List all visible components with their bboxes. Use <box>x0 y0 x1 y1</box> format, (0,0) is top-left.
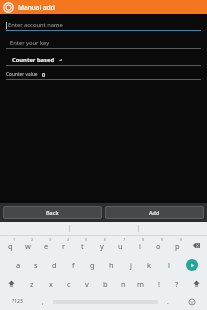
staticText: 0 <box>180 237 183 242</box>
staticText: Counter based <box>12 56 55 64</box>
button[interactable]: i <box>130 236 149 255</box>
staticText: n <box>121 279 126 289</box>
staticText: z <box>30 279 34 289</box>
button[interactable]: q <box>1 236 19 255</box>
button[interactable]: Shift <box>1 274 22 293</box>
button[interactable]: a <box>9 255 27 274</box>
staticText: p <box>175 241 180 251</box>
staticText: f <box>72 260 75 270</box>
staticText: x <box>49 279 53 289</box>
staticText: i <box>139 241 141 251</box>
button[interactable]: n <box>114 274 132 293</box>
button[interactable]: x <box>41 274 60 293</box>
button[interactable]: Add <box>105 206 204 219</box>
staticText: 7 <box>123 237 126 242</box>
button[interactable]: z <box>22 274 41 293</box>
staticText: 3 <box>49 237 52 242</box>
staticText: ?123 <box>12 298 23 305</box>
staticText: o <box>156 241 161 251</box>
staticText: v <box>85 279 89 289</box>
staticText: d <box>52 260 57 270</box>
button[interactable]: Backspace <box>187 236 206 255</box>
staticText: l <box>168 260 170 270</box>
staticText: Enter your key <box>10 39 50 47</box>
button[interactable]: y <box>92 236 111 255</box>
staticText: y <box>100 241 104 251</box>
button[interactable]: c <box>60 274 78 293</box>
button[interactable]: Counter based <box>12 54 201 65</box>
button[interactable]: p <box>168 236 187 255</box>
staticText: 0 <box>42 71 46 78</box>
staticText: Enter account name <box>8 21 63 29</box>
button[interactable]: j <box>121 255 140 274</box>
button[interactable]: . <box>158 293 178 310</box>
button[interactable]: Back <box>3 206 102 219</box>
button[interactable]: Space <box>53 298 158 305</box>
button[interactable]: Enter <box>178 255 206 274</box>
staticText: m <box>137 279 145 289</box>
staticText: 9 <box>161 237 164 242</box>
staticText: Add <box>149 209 160 216</box>
button[interactable]: Shift <box>186 274 206 293</box>
staticText: 5 <box>85 237 88 242</box>
button[interactable]: b <box>96 274 114 293</box>
staticText: 2 <box>31 237 34 242</box>
staticText: b <box>103 279 108 289</box>
staticText: h <box>109 260 114 270</box>
staticText: q <box>8 241 13 251</box>
button[interactable]: ? <box>168 274 186 293</box>
button[interactable]: , <box>33 293 53 310</box>
button[interactable]: u <box>111 236 130 255</box>
staticText: u <box>118 241 123 251</box>
staticText: ? <box>175 279 179 289</box>
staticText: e <box>44 241 49 251</box>
staticText: ! <box>158 279 161 289</box>
staticText: g <box>90 260 95 270</box>
button[interactable]: s <box>27 255 45 274</box>
button[interactable]: r <box>55 236 73 255</box>
staticText: , <box>42 297 44 306</box>
staticText: 4 <box>67 237 70 242</box>
button[interactable]: t <box>73 236 92 255</box>
button[interactable]: g <box>83 255 102 274</box>
button[interactable]: k <box>140 255 159 274</box>
button[interactable]: App icon <box>3 2 14 13</box>
button[interactable]: Enter account name <box>6 19 201 30</box>
staticText: j <box>130 260 132 270</box>
button[interactable]: l <box>159 255 178 274</box>
staticText: 6 <box>104 237 107 242</box>
button[interactable]: f <box>64 255 83 274</box>
staticText: k <box>147 260 152 270</box>
button[interactable]: ! <box>150 274 168 293</box>
button[interactable]: Counter value <box>6 69 201 79</box>
staticText: 8 <box>142 237 145 242</box>
button[interactable]: Enter your key <box>10 37 201 48</box>
staticText: t <box>81 241 84 251</box>
button[interactable]: Emoji <box>178 293 206 310</box>
staticText: r <box>62 241 66 251</box>
staticText: w <box>25 241 31 251</box>
button[interactable]: o <box>149 236 168 255</box>
button[interactable]: ?123 <box>1 293 33 310</box>
staticText: a <box>16 260 21 270</box>
staticText: . <box>167 297 169 306</box>
staticText: 1 <box>13 237 16 242</box>
button[interactable]: v <box>78 274 96 293</box>
button[interactable]: d <box>45 255 64 274</box>
button[interactable]: e <box>37 236 55 255</box>
staticText: Counter value <box>6 71 38 78</box>
staticText: Manual add <box>18 3 55 12</box>
button[interactable]: h <box>102 255 121 274</box>
button[interactable]: m <box>132 274 150 293</box>
staticText: s <box>34 260 38 270</box>
button[interactable]: w <box>19 236 37 255</box>
staticText: c <box>67 279 71 289</box>
staticText: Back <box>46 209 59 216</box>
